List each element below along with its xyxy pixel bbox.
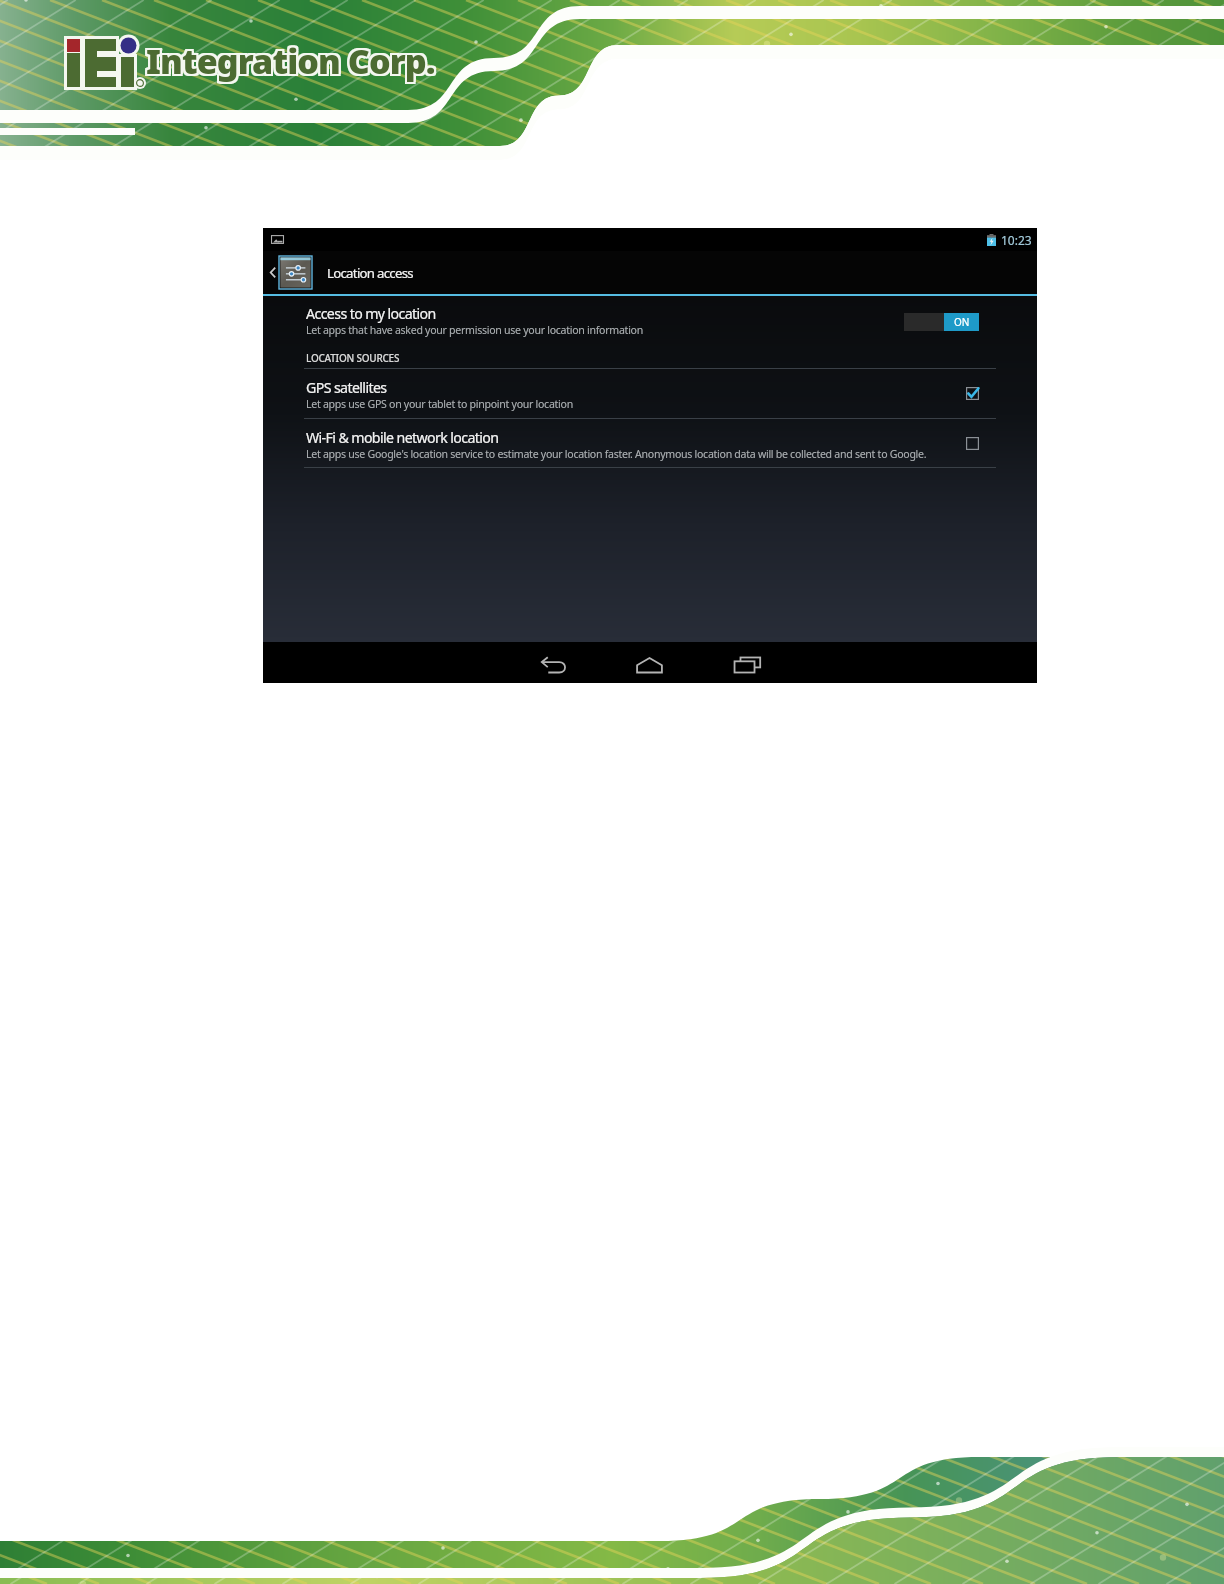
staticText: LOCATION SOURCES	[306, 351, 400, 365]
staticText: ON	[954, 315, 970, 329]
other: Navigate up	[268, 264, 277, 281]
staticText: Integration Corp.	[146, 38, 435, 84]
staticText: Integration Corp.	[148, 38, 437, 84]
button[interactable]: Navigate up	[263, 251, 1037, 294]
staticText: Integration Corp.	[144, 38, 433, 84]
button[interactable]: Wi-Fi & mobile network location	[263, 419, 1037, 467]
staticText: Let apps that have asked your permission…	[306, 323, 643, 337]
button[interactable]: GPS satellites enabled	[966, 387, 979, 400]
staticText: Integration Corp.	[148, 40, 437, 86]
button[interactable]: Back	[531, 649, 576, 681]
staticText: Let apps use Google's location service t…	[306, 447, 927, 461]
button[interactable]: Home	[627, 649, 672, 681]
button[interactable]: GPS satellites	[263, 369, 1037, 418]
staticText: Integration Corp.	[146, 36, 435, 82]
staticText: 10:23	[1001, 232, 1032, 248]
staticText: Access to my location	[306, 304, 436, 323]
staticText: Integration Corp.	[146, 40, 435, 86]
staticText: Let apps use GPS on your tablet to pinpo…	[306, 397, 573, 411]
staticText: Wi-Fi & mobile network location	[306, 428, 499, 447]
staticText: Integration Corp.	[148, 36, 437, 82]
button[interactable]: Recent apps	[725, 649, 770, 681]
staticText: Integration Corp.	[144, 40, 433, 86]
staticText: GPS satellites	[306, 378, 387, 397]
button[interactable]: Wi-Fi location disabled	[966, 437, 979, 450]
staticText: Integration Corp.	[144, 36, 433, 82]
button[interactable]: Access to my location	[263, 296, 1037, 348]
button[interactable]: ON	[904, 313, 979, 331]
staticText: Location access	[327, 264, 413, 282]
